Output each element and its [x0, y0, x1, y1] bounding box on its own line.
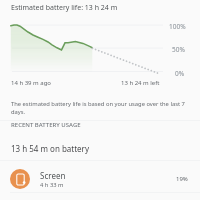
staticText: 13 h 54 m on battery: [11, 143, 89, 154]
staticText: 50%: [172, 45, 185, 54]
staticText: 13 h 24 m left: [121, 79, 160, 87]
staticText: 4 h 33 m: [40, 181, 64, 189]
staticText: The estimated battery life is based on y…: [11, 100, 185, 116]
staticText: Screen: [40, 170, 66, 181]
button[interactable]: Screen: [0, 165, 200, 193]
staticText: RECENT BATTERY USAGE: [11, 121, 81, 129]
staticText: 19%: [176, 175, 188, 183]
staticText: 0%: [175, 69, 185, 78]
staticText: 100%: [169, 22, 186, 31]
staticText: 14 h 39 m ago: [11, 79, 51, 87]
staticText: Estimated battery life: 13 h 24 m: [11, 3, 118, 13]
